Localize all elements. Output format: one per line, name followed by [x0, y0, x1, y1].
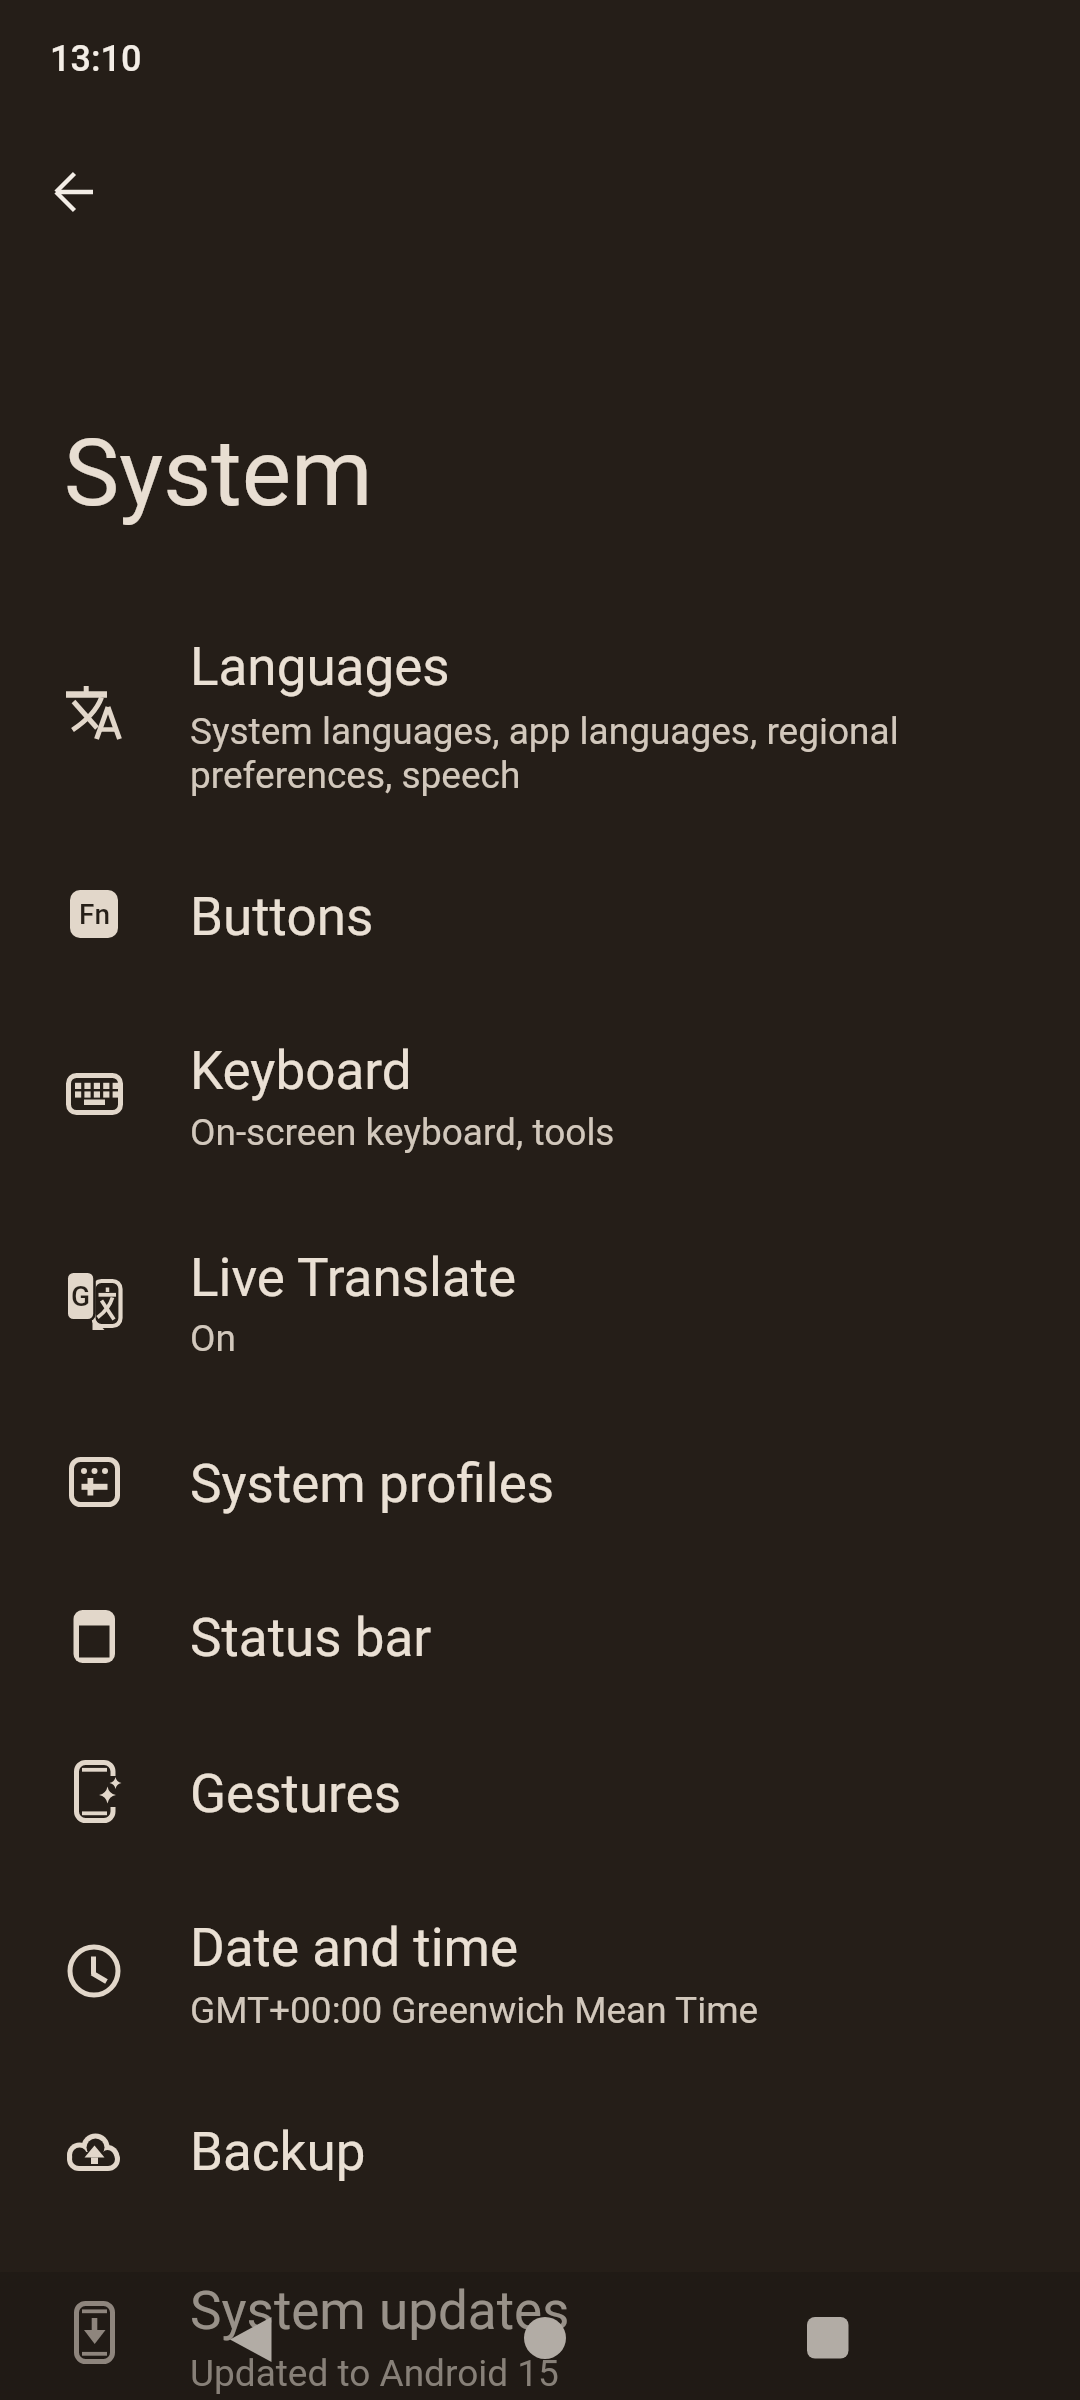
button[interactable] — [0, 844, 1080, 994]
staticText: On — [190, 1317, 236, 1360]
staticText: Languages — [190, 636, 450, 698]
staticText: Gestures — [190, 1763, 402, 1825]
staticText: Keyboard — [190, 1040, 412, 1102]
staticText: GMT+00:00 Greenwich Mean Time — [190, 1989, 759, 2032]
staticText: 13:10 — [50, 38, 142, 80]
button[interactable] — [0, 1714, 1080, 1868]
staticText: Backup — [190, 2121, 366, 2183]
button[interactable] — [0, 2074, 1080, 2228]
button[interactable] — [0, 2228, 1080, 2400]
staticText: Live Translate — [190, 1247, 517, 1309]
staticText: On-screen keyboard, tools — [190, 1111, 615, 1154]
button[interactable] — [0, 1560, 1080, 1714]
staticText: G — [71, 1280, 91, 1313]
staticText: System updates — [190, 2280, 570, 2342]
staticText: Date and time — [190, 1917, 519, 1979]
button[interactable] — [0, 592, 1080, 844]
button[interactable] — [180, 2280, 320, 2380]
staticText: Status bar — [190, 1607, 432, 1669]
button[interactable] — [0, 994, 1080, 1200]
button[interactable] — [0, 1868, 1080, 2074]
staticText: System — [64, 419, 373, 528]
button[interactable] — [0, 1406, 1080, 1560]
button[interactable] — [475, 2280, 615, 2380]
button[interactable] — [758, 2280, 898, 2380]
staticText: Updated to Android 15 — [190, 2352, 559, 2395]
button[interactable] — [0, 1200, 1080, 1406]
staticText: Buttons — [190, 886, 374, 948]
staticText: System languages, app languages, regiona… — [190, 710, 899, 753]
staticText: preferences, speech — [190, 754, 521, 797]
button[interactable] — [42, 160, 106, 224]
staticText: Fn — [79, 898, 110, 931]
staticText: System profiles — [190, 1453, 555, 1515]
